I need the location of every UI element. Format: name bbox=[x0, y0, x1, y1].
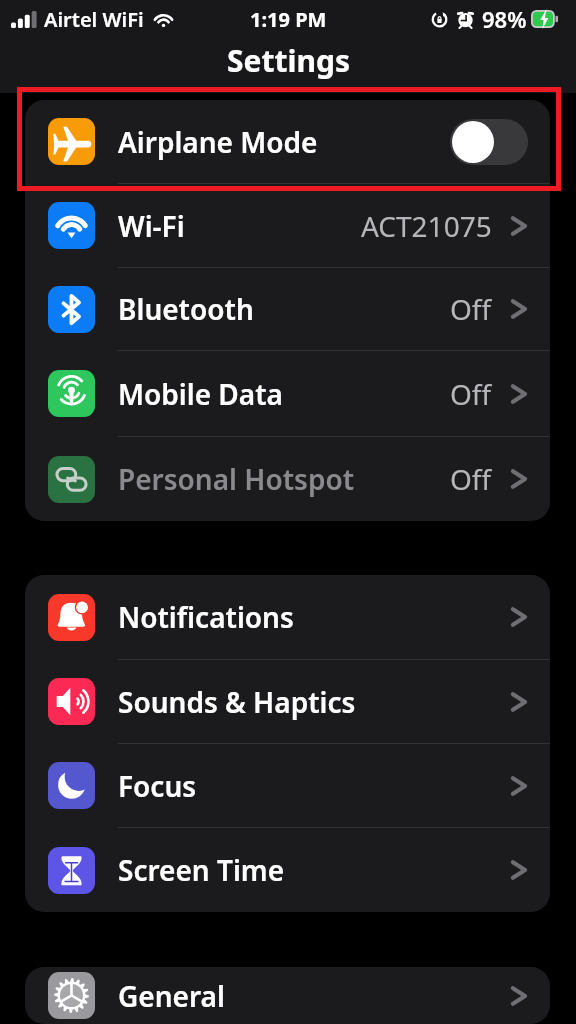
button[interactable]: Screen Time bbox=[25, 828, 550, 912]
staticText: Off bbox=[450, 290, 492, 328]
staticText: Settings bbox=[227, 40, 350, 81]
staticText: Focus bbox=[118, 767, 197, 805]
staticText: Screen Time bbox=[118, 851, 285, 889]
button[interactable]: Focus bbox=[25, 744, 550, 827]
button[interactable]: General bbox=[25, 967, 550, 1024]
staticText: Mobile Data bbox=[118, 375, 283, 413]
button[interactable]: Personal Hotspot bbox=[25, 437, 550, 521]
button[interactable]: Sounds & Haptics bbox=[25, 660, 550, 743]
staticText: Airtel WiFi bbox=[44, 6, 144, 33]
button[interactable]: Wi-Fi bbox=[25, 184, 550, 267]
staticText: Bluetooth bbox=[118, 290, 254, 328]
button[interactable]: Notifications bbox=[25, 575, 550, 659]
button[interactable]: Airplane Mode bbox=[25, 100, 550, 183]
staticText: Off bbox=[450, 460, 492, 498]
staticText: Personal Hotspot bbox=[118, 460, 355, 498]
staticText: 1:19 PM bbox=[250, 6, 327, 33]
staticText: Airplane Mode bbox=[118, 123, 318, 161]
staticText: Notifications bbox=[118, 598, 294, 636]
staticText: ACT21075 bbox=[361, 207, 492, 245]
button[interactable]: Toggle Airplane Mode bbox=[450, 119, 528, 165]
button[interactable]: Mobile Data bbox=[25, 351, 550, 436]
button[interactable]: Bluetooth bbox=[25, 268, 550, 350]
staticText: Wi-Fi bbox=[118, 207, 185, 245]
staticText: Off bbox=[450, 375, 492, 413]
staticText: General bbox=[118, 977, 225, 1015]
staticText: 98% bbox=[482, 4, 527, 34]
staticText: Sounds & Haptics bbox=[118, 683, 356, 721]
